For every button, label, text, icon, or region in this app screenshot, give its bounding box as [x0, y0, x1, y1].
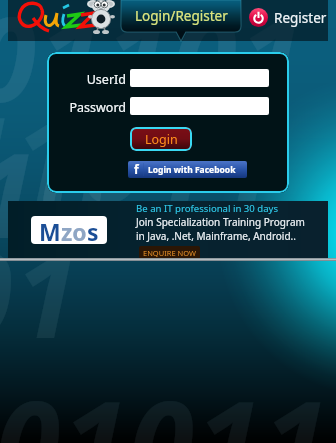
button[interactable]: ENQUIRE NOW — [139, 246, 200, 259]
staticText: zo — [61, 216, 87, 244]
staticText: ENQUIRE NOW — [143, 248, 196, 258]
button[interactable] — [130, 69, 269, 87]
staticText: 010110 — [0, 362, 332, 443]
staticText: 0110110 — [0, 0, 308, 272]
staticText: Password — [47, 99, 126, 116]
button[interactable]: M — [8, 201, 328, 258]
button[interactable] — [130, 97, 269, 115]
staticText: 1101101 — [0, 78, 284, 372]
staticText: M — [39, 216, 61, 244]
staticText: Join Specialization Training Program — [136, 215, 305, 229]
staticText: Login — [145, 131, 178, 148]
staticText: Register — [274, 9, 327, 27]
staticText: Be an IT professional in 30 days — [136, 202, 279, 215]
staticText: s — [87, 216, 99, 244]
button[interactable]: f — [128, 161, 247, 178]
staticText: UserId — [47, 71, 126, 88]
button[interactable]: Register — [249, 8, 327, 27]
staticText: Login/Register — [135, 7, 228, 25]
staticText: in Java, .Net, Mainframe, Android.. — [136, 229, 296, 243]
staticText: Login with Facebook — [148, 164, 236, 176]
staticText: f — [134, 161, 139, 177]
button[interactable]: Login/Register — [121, 0, 241, 32]
button[interactable]: Login — [130, 127, 192, 151]
